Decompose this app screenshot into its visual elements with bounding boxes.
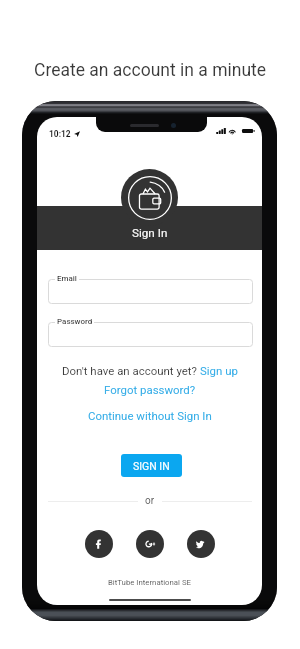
- button[interactable]: Password: [48, 322, 253, 347]
- button[interactable]: Sign in with Twitter: [187, 530, 215, 558]
- button[interactable]: Email: [48, 279, 253, 304]
- button[interactable]: Forgot password?: [104, 383, 196, 396]
- button[interactable]: Sign in with Google Plus: [136, 530, 164, 558]
- button[interactable]: Sign in with Facebook: [85, 530, 113, 558]
- staticText: Continue without Sign In: [88, 409, 212, 422]
- staticText: SIGN IN: [133, 460, 170, 472]
- staticText: Email: [57, 274, 77, 283]
- staticText: Sign up: [200, 364, 238, 377]
- staticText: Don't have an account yet?: [62, 364, 200, 377]
- staticText: or: [145, 495, 155, 507]
- staticText: 10:12: [49, 129, 71, 139]
- staticText: Password: [57, 317, 93, 326]
- staticText: Sign In: [132, 226, 168, 240]
- button[interactable]: Continue without Sign In: [88, 409, 212, 422]
- button[interactable]: Sign up: [200, 364, 238, 377]
- staticText: Forgot password?: [104, 383, 196, 396]
- button[interactable]: SIGN IN: [121, 454, 182, 477]
- staticText: BitTube International SE: [108, 578, 191, 587]
- staticText: Create an account in a minute: [34, 60, 267, 81]
